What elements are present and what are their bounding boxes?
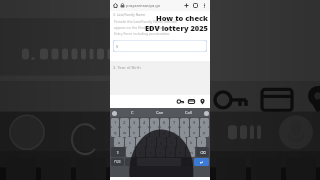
button[interactable]: k (187, 137, 196, 147)
staticText: r (144, 130, 146, 135)
button[interactable]: q (111, 127, 119, 137)
button[interactable]: 9 (190, 118, 199, 127)
staticText: 4 (143, 120, 146, 125)
staticText: Provide the Last/Family Name that will (114, 19, 177, 24)
button[interactable]: ⇧ (111, 147, 125, 157)
button[interactable]: Google (110, 109, 118, 117)
staticText: 2 (123, 120, 126, 125)
button[interactable]: 8 (180, 118, 189, 127)
staticText: e (133, 130, 136, 135)
button[interactable]: w (120, 127, 129, 137)
staticText: s (129, 140, 131, 145)
button[interactable]: Addresses (197, 96, 208, 107)
staticText: Call (185, 110, 192, 115)
staticText: Entry Form including punctuation. (114, 31, 171, 36)
button[interactable]: z (126, 147, 135, 157)
button[interactable]: Passwords (175, 96, 186, 107)
staticText: d (140, 140, 143, 145)
staticText: w (123, 130, 127, 135)
staticText: l (201, 140, 203, 145)
button[interactable]: t (150, 127, 159, 137)
button[interactable]: 6 (160, 118, 169, 127)
button[interactable]: ?123 (111, 158, 124, 166)
button[interactable]: j (177, 137, 186, 147)
button[interactable]: Tabs (191, 1, 200, 10)
button[interactable]: o (190, 127, 199, 137)
staticText: 8 (183, 120, 186, 125)
button[interactable]: r (140, 127, 149, 137)
button[interactable]: Call (174, 108, 202, 117)
staticText: i (184, 130, 186, 135)
button[interactable]: . (182, 158, 193, 166)
staticText: a (118, 140, 121, 145)
button[interactable]: prayaamaasiya.go (120, 1, 182, 10)
button[interactable]: Can (146, 108, 174, 117)
button[interactable]: e (130, 127, 139, 137)
button[interactable]: y (160, 127, 169, 137)
staticText: p (203, 130, 206, 135)
staticText: t (154, 130, 156, 135)
staticText: 5 (153, 120, 156, 125)
staticText: u (173, 130, 176, 135)
staticText: How to check (155, 13, 208, 23)
button[interactable]: Payment methods (186, 96, 197, 107)
button[interactable]: ⌫ (196, 147, 209, 157)
staticText: appear on the Electronic Diversity Visa (114, 25, 177, 30)
button[interactable]: 4 (140, 118, 149, 127)
button[interactable]: d (136, 137, 146, 147)
staticText: ⇧ (116, 150, 120, 155)
staticText: o (193, 130, 196, 135)
button[interactable]: Voice input (202, 109, 210, 117)
button[interactable]: a (114, 137, 124, 147)
button[interactable]: Home (111, 1, 120, 10)
staticText: 6 (163, 120, 166, 125)
button[interactable]: 3 (130, 118, 139, 127)
staticText: 3. Last/Family Name (113, 12, 146, 17)
button[interactable]: 2 (120, 118, 129, 127)
button[interactable]: l (197, 137, 206, 147)
button[interactable]: Enter (194, 158, 209, 166)
button[interactable]: , (125, 158, 136, 166)
button[interactable]: S (113, 40, 207, 52)
staticText: Can (156, 110, 164, 115)
button[interactable]: p (200, 127, 209, 137)
button[interactable]: m (186, 147, 195, 157)
staticText: z (130, 150, 132, 155)
staticText: q (114, 130, 117, 135)
staticText: m (189, 150, 193, 155)
staticText: 0 (203, 120, 206, 125)
button[interactable]: i (180, 127, 189, 137)
button[interactable]: 0 (200, 118, 209, 127)
button[interactable]: u (170, 127, 179, 137)
button[interactable]: 7 (170, 118, 179, 127)
staticText: prayaamaasiya.go (126, 3, 161, 8)
staticText: j (181, 140, 183, 145)
button[interactable]: 5 (150, 118, 159, 127)
staticText: 7 (173, 120, 176, 125)
staticText: ⌫ (200, 150, 206, 155)
button[interactable]: C (118, 108, 146, 117)
staticText: EDV lottery 2025 (144, 23, 208, 33)
button[interactable]: New tab (182, 1, 191, 10)
staticText: 1 (114, 120, 117, 125)
button[interactable]: 1 (111, 118, 119, 127)
button[interactable]: More options (200, 1, 209, 10)
button[interactable]: s (125, 137, 135, 147)
